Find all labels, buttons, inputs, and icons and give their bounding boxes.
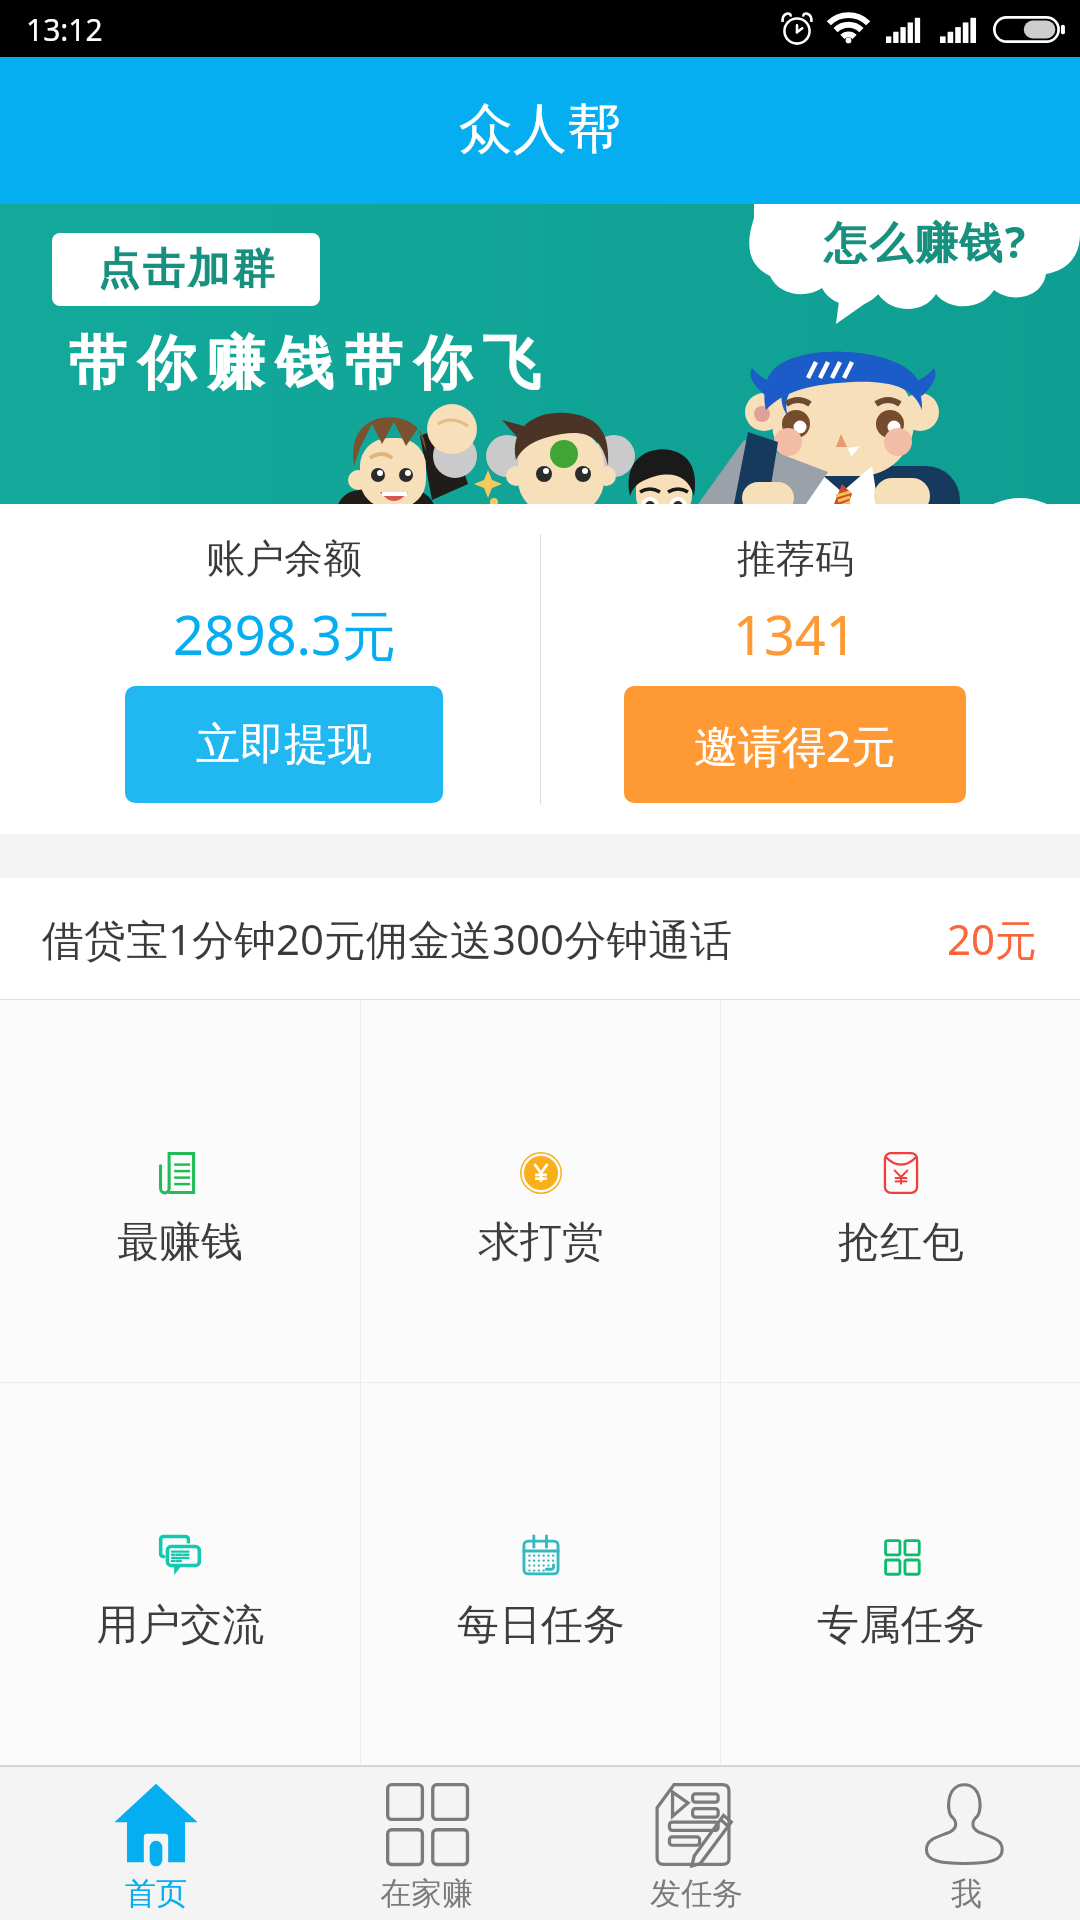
staticText: 抢红包 (838, 1216, 964, 1269)
staticText: 13:12 (26, 9, 103, 50)
staticText: 在家赚 (380, 1874, 473, 1913)
button[interactable]: 邀请得2元 (624, 686, 966, 803)
staticText: 求打赏 (478, 1216, 604, 1269)
button[interactable]: 最赚钱 (0, 1000, 360, 1382)
staticText: 邀请得2元 (694, 715, 896, 775)
button[interactable]: 借贷宝1分钟20元佣金送300分钟通话 (0, 878, 1080, 999)
staticText: 首页 (125, 1874, 187, 1913)
staticText: 1341 (733, 597, 857, 671)
button[interactable]: 求打赏 (361, 1000, 720, 1382)
button[interactable]: 在家赚 (291, 1767, 561, 1920)
staticText: 借贷宝1分钟20元佣金送300分钟通话 (42, 910, 947, 967)
staticText: 发任务 (650, 1874, 743, 1913)
staticText: 20元 (947, 910, 1038, 967)
staticText: 点击加群 (96, 243, 276, 296)
staticText: 立即提现 (196, 717, 372, 772)
staticText: 我 (951, 1874, 982, 1913)
button[interactable]: 我 (831, 1767, 1080, 1920)
button[interactable]: 用户交流 (0, 1383, 360, 1765)
staticText: 专属任务 (817, 1599, 985, 1652)
button[interactable]: 每日任务 (361, 1383, 720, 1765)
staticText: 推荐码 (737, 534, 854, 583)
staticText: 带你赚钱带你飞 (63, 327, 546, 400)
staticText: 怎么赚钱? (824, 212, 1028, 271)
button[interactable]: 发任务 (561, 1767, 831, 1920)
button[interactable]: 点击加群 (52, 233, 320, 306)
staticText: 每日任务 (457, 1599, 625, 1652)
button[interactable]: 专属任务 (721, 1383, 1080, 1765)
staticText: 2898.3元 (173, 597, 396, 671)
button[interactable]: 抢红包 (721, 1000, 1080, 1382)
button[interactable]: 首页 (21, 1767, 291, 1920)
button[interactable]: 怎么赚钱? (0, 204, 1080, 504)
staticText: 最赚钱 (117, 1216, 243, 1269)
button[interactable]: 立即提现 (125, 686, 443, 803)
staticText: 众人帮 (459, 95, 621, 163)
staticText: 账户余额 (206, 534, 362, 583)
staticText: 用户交流 (96, 1599, 264, 1652)
